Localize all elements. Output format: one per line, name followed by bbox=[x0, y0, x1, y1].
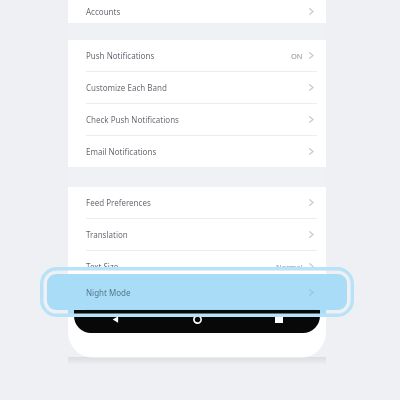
button[interactable] bbox=[47, 274, 347, 310]
staticText: Night Mode bbox=[86, 292, 131, 303]
button[interactable]: Night Mode bbox=[68, 282, 326, 314]
button[interactable]: Recent apps bbox=[238, 305, 320, 333]
button[interactable]: Translation bbox=[68, 219, 326, 251]
button[interactable]: Customize Each Band bbox=[68, 72, 326, 104]
staticText: Check Push Notifications bbox=[86, 114, 179, 125]
button[interactable]: Home bbox=[156, 305, 238, 333]
staticText: Text Size bbox=[86, 261, 119, 272]
staticText: Accounts bbox=[86, 6, 121, 17]
staticText: Email Notifications bbox=[86, 146, 157, 157]
staticText: Push Notifications bbox=[86, 50, 155, 61]
staticText: ON bbox=[291, 51, 303, 61]
button[interactable]: Feed Preferences bbox=[68, 187, 326, 219]
button[interactable]: Check Push Notifications bbox=[68, 104, 326, 136]
staticText: Customize Each Band bbox=[86, 82, 167, 93]
button[interactable]: Back bbox=[74, 305, 156, 333]
button[interactable]: Text Size bbox=[68, 251, 326, 282]
staticText: Translation bbox=[86, 229, 128, 240]
staticText: Normal bbox=[276, 262, 303, 272]
button[interactable]: Accounts bbox=[68, 0, 326, 23]
staticText: Night Mode bbox=[86, 287, 131, 298]
button[interactable]: Push Notifications bbox=[68, 40, 326, 72]
button[interactable]: Email Notifications bbox=[68, 136, 326, 167]
staticText: Feed Preferences bbox=[86, 197, 151, 208]
